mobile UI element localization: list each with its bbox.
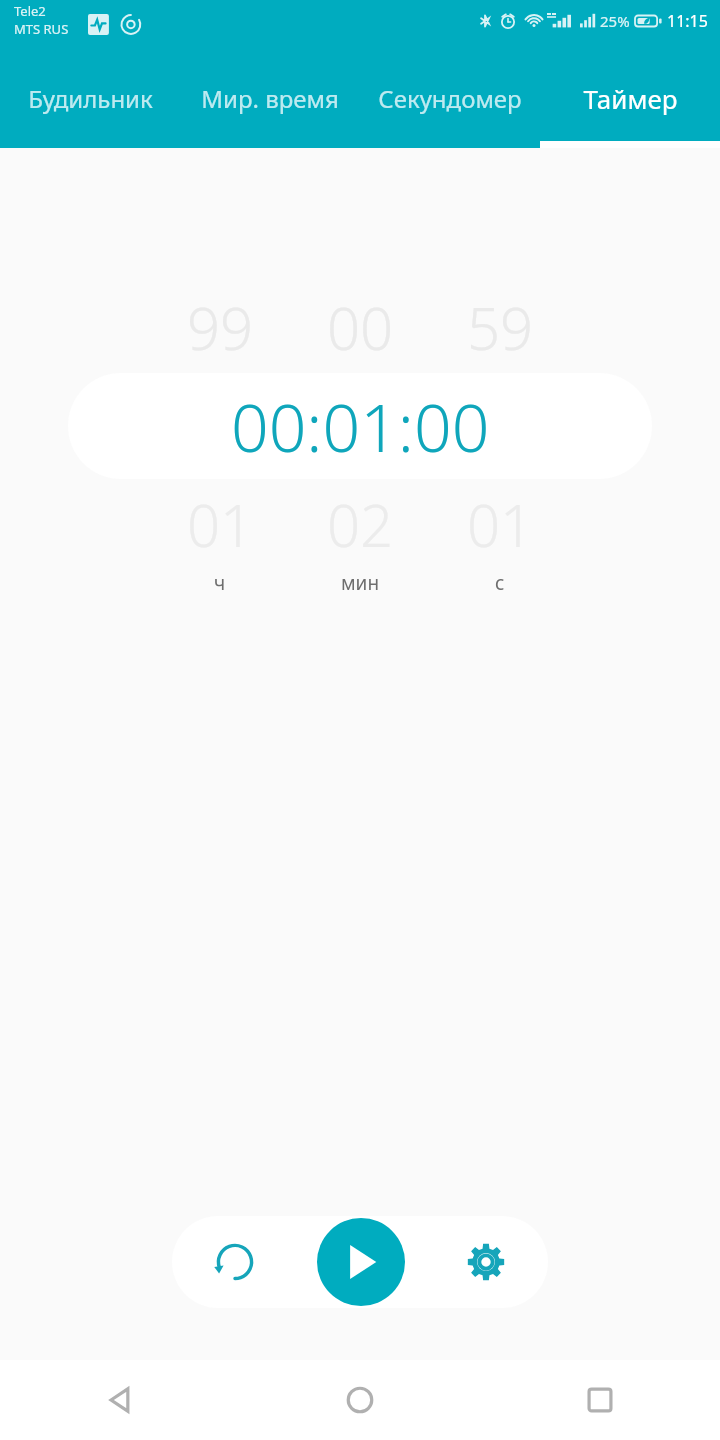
button[interactable]: Settings: [423, 1216, 548, 1308]
staticText: с: [495, 570, 505, 596]
staticText: мин: [341, 570, 380, 596]
staticText: Tele2: [14, 2, 46, 20]
button[interactable]: Recent apps: [480, 1360, 720, 1440]
staticText: 99: [187, 288, 254, 367]
button[interactable]: Таймер: [540, 48, 720, 148]
staticText: 25%: [600, 11, 630, 31]
button[interactable]: Секундомер: [360, 48, 540, 148]
staticText: 00:01:00: [231, 381, 490, 471]
staticText: ч: [214, 570, 226, 596]
staticText: Таймер: [583, 81, 678, 116]
staticText: MTS RUS: [14, 20, 69, 38]
staticText: 02: [327, 485, 394, 564]
button[interactable]: 00:01:00: [68, 373, 652, 479]
staticText: Мир. время: [201, 82, 339, 115]
staticText: 59: [467, 288, 534, 367]
button[interactable]: Будильник: [0, 48, 180, 148]
button[interactable]: Home: [240, 1360, 480, 1440]
staticText: 00: [327, 288, 394, 367]
button[interactable]: Reset: [172, 1216, 298, 1308]
button[interactable]: Back: [0, 1360, 240, 1440]
staticText: 01: [187, 485, 254, 564]
staticText: Секундомер: [378, 82, 522, 115]
button[interactable]: Мир. время: [180, 48, 360, 148]
staticText: 01: [467, 485, 534, 564]
staticText: Будильник: [28, 82, 153, 115]
button[interactable]: Start: [317, 1218, 405, 1306]
staticText: 11:15: [667, 10, 708, 32]
